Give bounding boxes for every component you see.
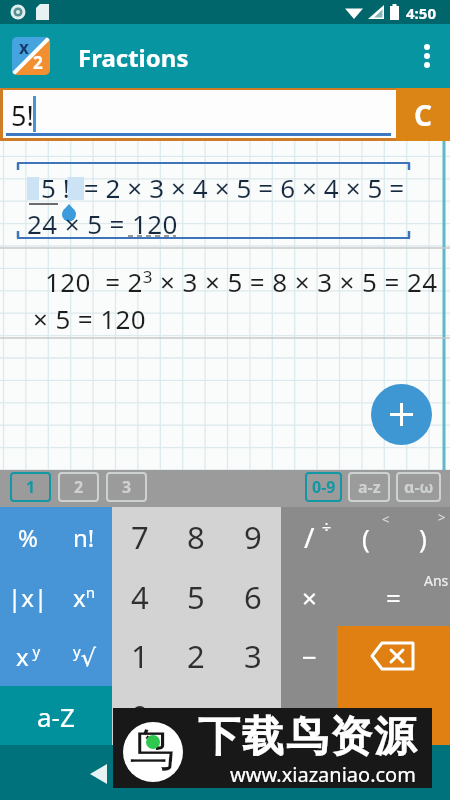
staticText: Fractions <box>78 41 189 74</box>
staticText: Ans <box>424 571 449 590</box>
staticText: × <box>302 580 317 615</box>
button[interactable]: 5 <box>168 567 224 627</box>
button[interactable]: x <box>12 37 50 75</box>
button[interactable]: 2 <box>58 472 99 502</box>
button[interactable]: 0 <box>112 686 168 746</box>
button[interactable]: . <box>168 686 224 746</box>
button[interactable]: 6 <box>225 567 281 627</box>
button[interactable]: C <box>396 88 450 141</box>
staticText: |x| <box>8 581 48 614</box>
staticText: 鸟 <box>130 722 175 779</box>
staticText: 1 <box>131 635 149 677</box>
staticText: 4 <box>131 576 149 618</box>
button[interactable]: 5! <box>3 90 396 138</box>
staticText: 2 <box>33 51 43 74</box>
staticText: α-ω <box>404 476 434 498</box>
staticText: 0-9 <box>312 476 336 498</box>
staticText: 6 <box>244 576 262 618</box>
staticText: 2 <box>187 635 205 677</box>
button[interactable]: 0-9 <box>305 472 342 502</box>
staticText: 下载鸟资源 <box>197 711 417 764</box>
button[interactable]: 4 <box>112 567 168 627</box>
staticText: × 5 = 120 <box>33 301 147 336</box>
button[interactable]: 2 <box>168 626 224 686</box>
staticText: 4:50 <box>406 3 436 23</box>
button[interactable]: ( <box>337 507 394 567</box>
staticText: a-Z <box>37 699 75 734</box>
staticText: % <box>18 521 38 554</box>
staticText: 24 × 5 = 120 <box>27 206 178 241</box>
staticText: 3 <box>244 635 262 677</box>
button[interactable]: ) <box>394 507 450 567</box>
button[interactable] <box>337 626 450 686</box>
staticText: a-z <box>358 476 381 498</box>
button[interactable]: × <box>281 567 337 627</box>
button[interactable]: n! <box>56 507 112 567</box>
staticText: x <box>19 37 29 59</box>
staticText: ( <box>362 520 370 555</box>
button[interactable]: / <box>281 507 337 567</box>
staticText: 120 = 23 × 3 × 5 = 8 × 3 × 5 = 24 <box>45 264 438 299</box>
staticText: > <box>438 508 446 526</box>
staticText: . <box>192 695 201 737</box>
button[interactable]: y√ <box>56 626 112 686</box>
button[interactable] <box>80 754 120 794</box>
staticText: C <box>414 96 432 134</box>
staticText: / <box>304 518 315 556</box>
staticText: x y <box>16 640 41 673</box>
button[interactable]: 9 <box>225 507 281 567</box>
button[interactable]: % <box>0 507 56 567</box>
staticText: 2 <box>74 476 84 498</box>
staticText: < <box>382 510 390 528</box>
staticText: 0 <box>131 695 149 737</box>
staticText: ÷ <box>322 516 332 538</box>
staticText: ) <box>419 520 427 555</box>
button[interactable]: = <box>337 567 450 627</box>
button[interactable]: 1 <box>112 626 168 686</box>
button[interactable]: 3 <box>225 626 281 686</box>
staticText: 7 <box>131 516 149 558</box>
button[interactable]: − <box>281 626 337 686</box>
button[interactable] <box>371 384 432 445</box>
staticText: www.xiazaniao.com <box>230 761 416 788</box>
staticText: n! <box>73 521 95 554</box>
staticText: 3 <box>122 476 132 498</box>
staticText: 9 <box>244 516 262 558</box>
staticText: = <box>386 580 401 615</box>
staticText: 5 ! = 2 × 3 × 4 × 5 = 6 × 4 × 5 = <box>41 170 405 205</box>
button[interactable]: a-Z <box>0 686 112 746</box>
button[interactable] <box>412 32 442 80</box>
button[interactable]: xn <box>56 567 112 627</box>
button[interactable]: 7 <box>112 507 168 567</box>
button[interactable]: |x| <box>0 567 56 627</box>
button[interactable]: a-z <box>348 472 390 502</box>
staticText: y√ <box>73 641 96 672</box>
staticText: 1 <box>26 476 36 498</box>
staticText: 8 <box>187 516 205 558</box>
staticText: 5! <box>11 97 34 134</box>
button[interactable]: x y <box>0 626 56 686</box>
staticText: 5 <box>187 576 205 618</box>
button[interactable] <box>337 686 450 746</box>
button[interactable]: 1 <box>10 472 51 502</box>
button[interactable]: 3 <box>106 472 147 502</box>
staticText: xn <box>73 581 95 614</box>
staticText: − <box>302 639 317 674</box>
button[interactable]: α-ω <box>396 472 441 502</box>
button[interactable]: 8 <box>168 507 224 567</box>
